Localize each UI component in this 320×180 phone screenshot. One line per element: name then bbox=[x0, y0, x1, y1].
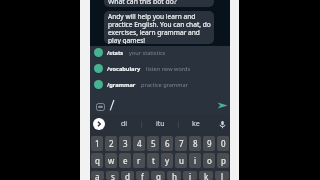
button[interactable]: 1 bbox=[91, 136, 103, 151]
staticText: h bbox=[172, 171, 177, 180]
button[interactable]: 0 bbox=[217, 136, 229, 151]
staticText: 4 bbox=[137, 138, 142, 149]
button[interactable]: j bbox=[183, 171, 197, 180]
button[interactable]: 5 bbox=[147, 136, 159, 151]
staticText: f bbox=[141, 171, 144, 180]
button[interactable]: y bbox=[161, 153, 173, 168]
staticText: q bbox=[95, 155, 100, 166]
staticText: 1 bbox=[95, 138, 100, 149]
button[interactable]: q bbox=[91, 153, 103, 168]
button[interactable]: 7 bbox=[175, 136, 187, 151]
staticText: i bbox=[194, 155, 197, 166]
staticText: 9 bbox=[207, 138, 212, 149]
staticText: /vocabulary bbox=[107, 65, 141, 73]
staticText: y bbox=[165, 155, 170, 166]
staticText: 0 bbox=[221, 138, 226, 149]
button[interactable]: /stats bbox=[90, 46, 230, 62]
staticText: g bbox=[156, 171, 161, 180]
staticText: Andy will help you learn and practice En… bbox=[108, 12, 211, 44]
button[interactable]: h bbox=[167, 171, 181, 180]
button[interactable]: di bbox=[113, 114, 135, 134]
staticText: r bbox=[137, 155, 141, 166]
button[interactable]: p bbox=[217, 153, 229, 168]
button[interactable]: 3 bbox=[119, 136, 131, 151]
staticText: 3 bbox=[123, 138, 128, 149]
button[interactable]: s bbox=[106, 171, 119, 180]
button[interactable]: w bbox=[105, 153, 117, 168]
button[interactable]: ke bbox=[185, 114, 207, 134]
button[interactable]: e bbox=[119, 153, 131, 168]
staticText: your statistics bbox=[129, 49, 166, 57]
button[interactable]: t bbox=[147, 153, 159, 168]
button[interactable]: i bbox=[189, 153, 201, 168]
staticText: 2 bbox=[109, 138, 114, 149]
button[interactable]: o bbox=[203, 153, 215, 168]
staticText: l bbox=[221, 171, 224, 180]
staticText: practice grammar bbox=[141, 81, 188, 89]
button[interactable]: More suggestions bbox=[93, 118, 105, 130]
staticText: listen new words bbox=[146, 65, 191, 73]
staticText: t bbox=[152, 155, 155, 166]
button[interactable]: /grammar bbox=[90, 78, 230, 94]
button[interactable]: /vocabulary bbox=[90, 62, 230, 78]
button[interactable]: Emoji bbox=[96, 103, 105, 111]
staticText: What can this bot do? bbox=[108, 0, 177, 4]
button[interactable]: 4 bbox=[133, 136, 145, 151]
button[interactable]: u bbox=[175, 153, 187, 168]
staticText: /grammar bbox=[107, 81, 136, 89]
button[interactable]: Voice input bbox=[218, 120, 227, 129]
button[interactable]: 2 bbox=[105, 136, 117, 151]
button[interactable]: k bbox=[199, 171, 213, 180]
button[interactable]: d bbox=[121, 171, 134, 180]
staticText: s bbox=[111, 171, 115, 180]
button[interactable]: a bbox=[91, 171, 104, 180]
button[interactable]: r bbox=[133, 153, 145, 168]
staticText: p bbox=[221, 155, 226, 166]
button[interactable]: Send bbox=[216, 99, 228, 111]
staticText: /stats bbox=[107, 49, 124, 57]
staticText: 7 bbox=[179, 138, 184, 149]
staticText: o bbox=[207, 155, 212, 166]
button[interactable]: l bbox=[215, 171, 229, 180]
staticText: w bbox=[108, 155, 115, 166]
staticText: u bbox=[179, 155, 184, 166]
button[interactable]: itu bbox=[149, 114, 171, 134]
staticText: 5 bbox=[151, 138, 156, 149]
staticText: itu bbox=[156, 119, 165, 129]
staticText: a bbox=[95, 171, 100, 180]
button[interactable]: f bbox=[136, 171, 149, 180]
staticText: di bbox=[121, 119, 128, 129]
button[interactable]: 8 bbox=[189, 136, 201, 151]
staticText: ke bbox=[192, 119, 200, 129]
button[interactable]: 9 bbox=[203, 136, 215, 151]
button[interactable]: g bbox=[151, 171, 165, 180]
button[interactable]: 6 bbox=[161, 136, 173, 151]
staticText: 8 bbox=[193, 138, 198, 149]
staticText: e bbox=[123, 155, 128, 166]
staticText: k bbox=[204, 171, 209, 180]
staticText: 6 bbox=[165, 138, 170, 149]
staticText: j bbox=[189, 171, 192, 180]
staticText: d bbox=[125, 171, 130, 180]
